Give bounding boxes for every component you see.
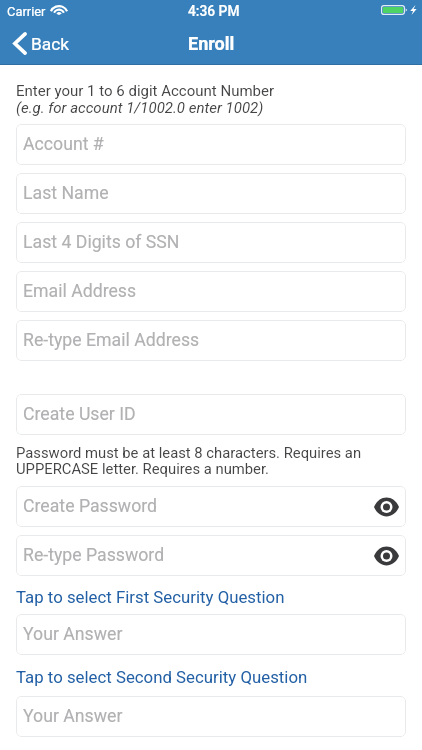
staticText: Carrier	[7, 4, 46, 19]
staticText: Last 4 Digits of SSN	[23, 232, 180, 253]
button[interactable]: Re-type Email Address	[16, 320, 406, 361]
staticText: Account #	[23, 134, 104, 155]
staticText: Enroll	[188, 33, 235, 54]
button[interactable]: Tap to select Second Security Question	[16, 667, 308, 687]
staticText: Re-type Password	[23, 545, 165, 566]
staticText: Your Answer	[23, 624, 123, 645]
button[interactable]: Tap to select First Security Question	[16, 587, 285, 607]
staticText: Re-type Email Address	[23, 330, 200, 351]
staticText: Last Name	[23, 183, 109, 204]
staticText: Password must be at least 8 characters. …	[16, 444, 362, 461]
button[interactable]: Last Name	[16, 173, 406, 214]
button[interactable]: Back	[13, 31, 70, 56]
button[interactable]: Re-type Password	[16, 535, 406, 576]
button[interactable]: Account #	[16, 124, 406, 165]
staticText: Create Password	[23, 496, 158, 517]
button[interactable]: Email Address	[16, 271, 406, 312]
button[interactable]: Create Password	[16, 486, 406, 527]
staticText: Enter your 1 to 6 digit Account Number	[16, 82, 275, 100]
staticText: Email Address	[23, 281, 137, 302]
staticText: Create User ID	[23, 404, 136, 425]
staticText: Your Answer	[23, 706, 123, 727]
staticText: UPPERCASE letter. Requires a number.	[16, 460, 269, 477]
button[interactable]: Show password	[373, 543, 399, 569]
button[interactable]: Your Answer	[16, 614, 406, 655]
button[interactable]: Create User ID	[16, 394, 406, 435]
button[interactable]: Your Answer	[16, 696, 406, 737]
button[interactable]: Last 4 Digits of SSN	[16, 222, 406, 263]
staticText: (e.g. for account 1/1002.0 enter 1002)	[16, 99, 264, 117]
staticText: 4:36 PM	[188, 3, 240, 19]
staticText: Back	[31, 34, 70, 54]
button[interactable]: Show password	[373, 494, 399, 520]
